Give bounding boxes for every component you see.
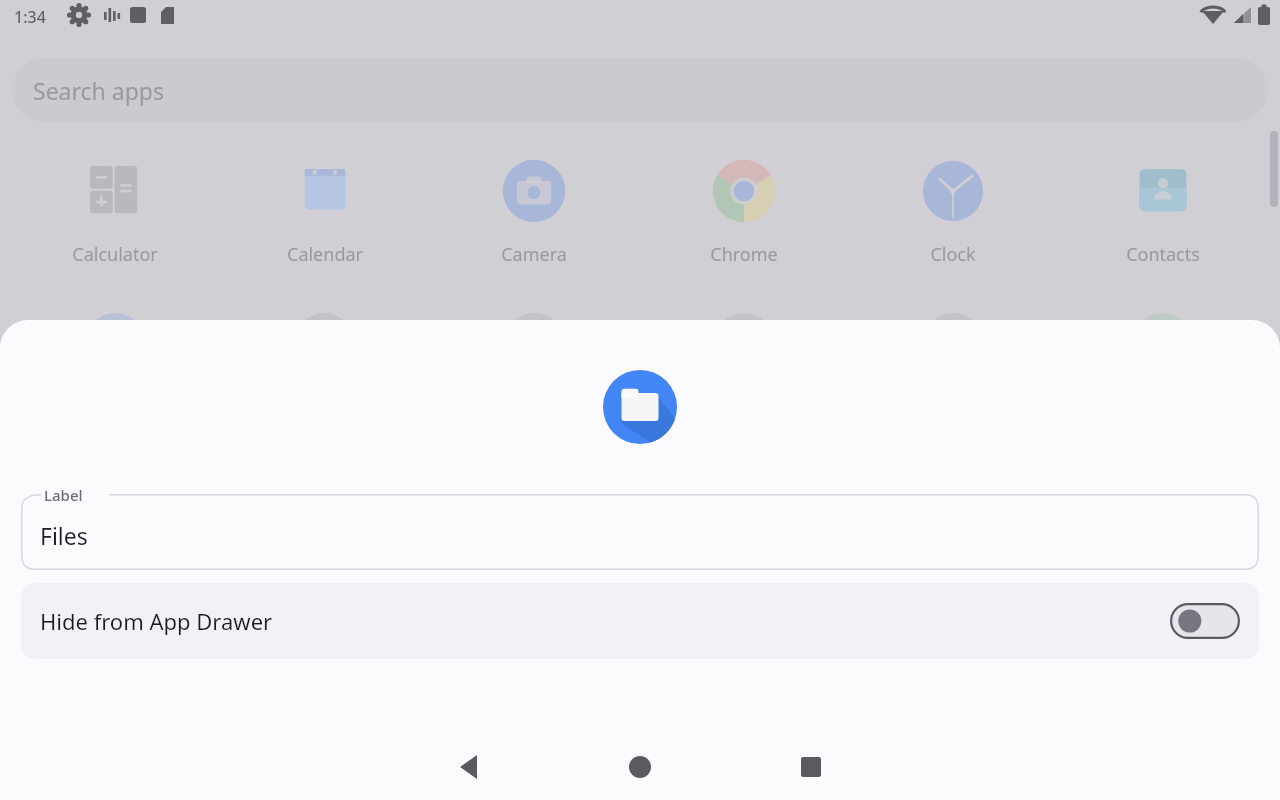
other: Hide from App Drawer toggle, off (1170, 603, 1240, 639)
button[interactable]: Hide from App Drawer (21, 583, 1259, 659)
staticText: Hide from App Drawer (40, 606, 273, 636)
staticText: Calculator (72, 242, 158, 267)
staticText: Files (40, 520, 88, 551)
button[interactable]: Back (437, 735, 501, 799)
button[interactable]: Chrome (674, 152, 814, 267)
button[interactable]: Camera (464, 152, 604, 267)
button[interactable]: Home (608, 735, 672, 799)
button[interactable]: Calculator (45, 152, 185, 267)
staticText: Search apps (33, 75, 164, 106)
staticText: Camera (501, 242, 567, 267)
button[interactable]: Calendar (255, 152, 395, 267)
staticText: Chrome (710, 242, 778, 267)
button[interactable]: Label (21, 494, 1259, 570)
button[interactable]: Recents (779, 735, 843, 799)
staticText: Calendar (287, 242, 363, 267)
button[interactable]: Contacts (1093, 152, 1233, 267)
button[interactable]: Search apps (12, 58, 1268, 122)
button[interactable]: Clock (883, 152, 1023, 267)
staticText: Contacts (1126, 242, 1200, 267)
staticText: Clock (930, 242, 976, 267)
staticText: 1:34 (14, 6, 46, 28)
staticText: Label (44, 485, 83, 505)
